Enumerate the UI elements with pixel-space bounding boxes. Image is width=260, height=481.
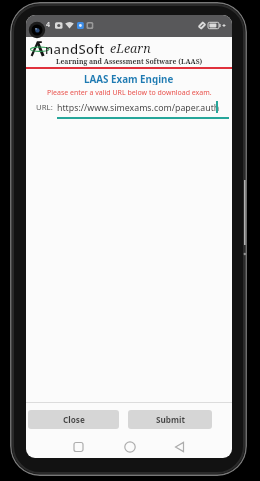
staticText: Close — [63, 414, 85, 425]
staticText: eLearn — [110, 40, 151, 57]
button[interactable] — [26, 429, 232, 458]
staticText: Submit — [156, 414, 185, 425]
button[interactable]: Close — [28, 410, 119, 429]
staticText: URL: — [36, 102, 53, 112]
staticText: Learning and Assessment Software (LAAS) — [56, 57, 203, 66]
staticText: nandSoft — [45, 40, 105, 57]
staticText: Please enter a valid URL below to downlo… — [47, 88, 212, 96]
button[interactable]: Submit — [128, 410, 212, 429]
staticText: https://www.simexams.com/paper.auth — [57, 102, 220, 113]
staticText: LAAS Exam Engine — [84, 73, 174, 85]
staticText: 4 — [46, 20, 51, 30]
